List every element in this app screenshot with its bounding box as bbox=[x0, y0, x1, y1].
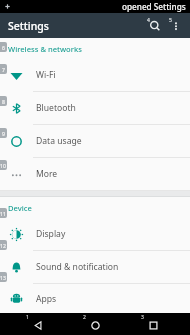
button[interactable]: More bbox=[0, 158, 190, 190]
button[interactable]: Search bbox=[144, 15, 166, 37]
staticText: More bbox=[36, 168, 58, 180]
staticText: Sound & notification bbox=[36, 261, 119, 273]
staticText: Bluetooth bbox=[36, 102, 76, 114]
button[interactable]: Home bbox=[75, 313, 115, 335]
staticText: 11 bbox=[0, 210, 6, 217]
staticText: Data usage bbox=[36, 135, 82, 147]
staticText: 9 bbox=[2, 130, 5, 137]
staticText: 1 bbox=[26, 314, 29, 321]
button[interactable]: More options bbox=[166, 16, 186, 36]
button[interactable]: Back bbox=[18, 313, 58, 335]
button[interactable]: Data usage bbox=[0, 125, 190, 157]
staticText: 13 bbox=[0, 274, 6, 281]
button[interactable]: Recents bbox=[133, 313, 173, 335]
staticText: 4 bbox=[147, 17, 150, 24]
staticText: Device bbox=[8, 203, 32, 213]
button[interactable]: Bluetooth bbox=[0, 92, 190, 124]
staticText: Wireless & networks bbox=[8, 44, 82, 54]
button[interactable]: Apps bbox=[0, 284, 190, 313]
staticText: opened Settings bbox=[122, 1, 186, 12]
staticText: 3 bbox=[141, 314, 144, 321]
staticText: 12 bbox=[0, 242, 6, 249]
button[interactable]: Sound & notification bbox=[0, 251, 190, 283]
staticText: 6 bbox=[2, 44, 5, 51]
staticText: Display bbox=[36, 228, 66, 240]
staticText: 8 bbox=[2, 98, 5, 105]
staticText: 5 bbox=[169, 17, 172, 24]
staticText: Wi-Fi bbox=[36, 69, 56, 81]
staticText: 2 bbox=[83, 314, 86, 321]
staticText: 7 bbox=[2, 66, 5, 73]
staticText: 10 bbox=[0, 162, 6, 169]
staticText: Apps bbox=[36, 293, 57, 305]
staticText: Settings bbox=[8, 19, 49, 33]
button[interactable]: Display bbox=[0, 218, 190, 250]
button[interactable]: Wi-Fi bbox=[0, 59, 190, 91]
